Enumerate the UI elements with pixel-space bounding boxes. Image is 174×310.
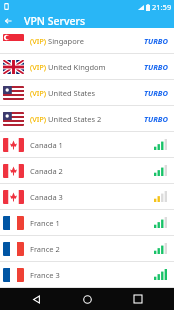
staticText: Canada 2 xyxy=(30,166,63,176)
button[interactable]: (VIP) United States 2 xyxy=(0,106,174,131)
button[interactable]: Canada 3 xyxy=(0,184,174,209)
staticText: (VIP) Singapore xyxy=(30,36,84,46)
button[interactable]: Home xyxy=(72,288,102,310)
button[interactable]: Back xyxy=(21,288,51,310)
button[interactable]: France 2 xyxy=(0,236,174,261)
staticText: France 1 xyxy=(30,218,60,228)
button[interactable]: Canada 1 xyxy=(0,132,174,157)
staticText: France 3 xyxy=(30,270,60,280)
staticText: (VIP) United Kingdom xyxy=(30,62,106,72)
staticText: Canada 3 xyxy=(30,192,63,202)
button[interactable]: (VIP) Singapore xyxy=(0,28,174,53)
staticText: (VIP) United States xyxy=(30,88,96,98)
staticText: (VIP) United States 2 xyxy=(30,114,102,124)
staticText: VPN Servers xyxy=(24,14,86,28)
staticText: TURBO xyxy=(144,36,168,46)
button[interactable]: Canada 2 xyxy=(0,158,174,183)
button[interactable]: (VIP) United Kingdom xyxy=(0,54,174,79)
staticText: TURBO xyxy=(144,114,168,124)
button[interactable]: (VIP) United States xyxy=(0,80,174,105)
button[interactable]: Back xyxy=(0,13,15,28)
staticText: TURBO xyxy=(144,88,168,98)
button[interactable]: Recent apps xyxy=(123,288,153,310)
staticText: TURBO xyxy=(144,62,168,72)
button[interactable]: France 1 xyxy=(0,210,174,235)
staticText: Canada 1 xyxy=(30,140,63,150)
button[interactable]: France 3 xyxy=(0,262,174,287)
staticText: 21:59 xyxy=(152,2,172,12)
staticText: France 2 xyxy=(30,244,60,254)
